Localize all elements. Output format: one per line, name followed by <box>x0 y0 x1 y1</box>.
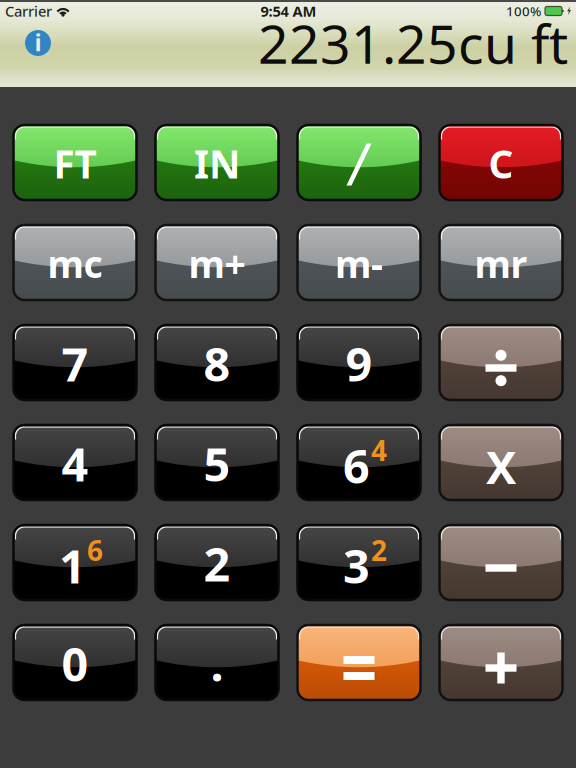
staticText: 6 <box>343 434 370 496</box>
button[interactable]: m+ <box>155 225 278 300</box>
staticText: 2231.25cu ft <box>258 8 568 78</box>
button[interactable]: 2 <box>155 525 278 600</box>
button[interactable]: . <box>155 625 278 700</box>
button[interactable]: m- <box>297 225 420 300</box>
staticText: 2 <box>203 532 230 594</box>
staticText: mr <box>474 239 527 288</box>
staticText: 7 <box>61 332 88 394</box>
staticText: 6 <box>87 531 103 569</box>
button[interactable]: mc <box>13 225 136 300</box>
staticText: X <box>486 436 516 497</box>
staticText: FT <box>53 138 96 189</box>
staticText: IN <box>194 138 240 189</box>
button[interactable]: mr <box>439 225 562 300</box>
staticText: 3 <box>343 534 370 596</box>
button[interactable]: X <box>439 425 562 500</box>
button[interactable]: 8 <box>155 325 278 400</box>
staticText: 100% <box>506 2 541 20</box>
button[interactable]: 6 <box>297 425 420 500</box>
button[interactable]: 5 <box>155 425 278 500</box>
button[interactable] <box>439 525 562 600</box>
button[interactable]: 3 <box>297 525 420 600</box>
staticText: 4 <box>371 431 387 469</box>
button[interactable]: 9 <box>297 325 420 400</box>
staticText: . <box>210 632 223 694</box>
staticText: 9:54 AM <box>260 1 316 21</box>
button[interactable]: 4 <box>13 425 136 500</box>
staticText: 5 <box>203 432 230 494</box>
button[interactable]: FT <box>13 125 136 200</box>
button[interactable] <box>439 625 562 700</box>
staticText: 0 <box>61 632 88 694</box>
staticText: Carrier <box>5 1 52 21</box>
button[interactable] <box>297 125 420 200</box>
staticText: 9 <box>345 332 372 394</box>
button[interactable]: 1 <box>13 525 136 600</box>
staticText: mc <box>47 239 102 288</box>
staticText: 2 <box>371 531 387 569</box>
button[interactable]: 7 <box>13 325 136 400</box>
staticText: C <box>488 138 513 189</box>
staticText: m+ <box>188 239 245 288</box>
staticText: 4 <box>61 432 88 494</box>
staticText: 8 <box>203 332 230 394</box>
staticText: m- <box>335 239 383 288</box>
button[interactable]: Info <box>0 21 64 65</box>
staticText: i <box>34 26 41 58</box>
staticText: 1 <box>59 534 86 596</box>
button[interactable]: 0 <box>13 625 136 700</box>
button[interactable]: IN <box>155 125 278 200</box>
button[interactable] <box>439 325 562 400</box>
button[interactable] <box>297 625 420 700</box>
button[interactable]: C <box>439 125 562 200</box>
